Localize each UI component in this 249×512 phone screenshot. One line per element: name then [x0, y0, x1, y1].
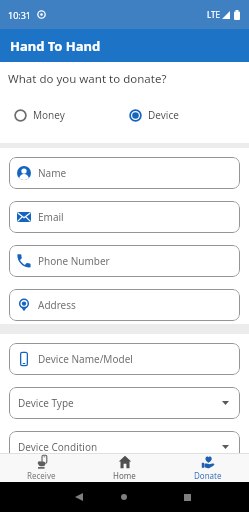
staticText: Device Condition: [18, 440, 98, 454]
button[interactable]: Phone Number: [9, 245, 240, 277]
staticText: Device Name/Model: [38, 352, 133, 366]
staticText: Device: [148, 108, 179, 122]
button[interactable]: Email: [9, 201, 240, 233]
button[interactable]: Device Name/Model: [9, 343, 240, 375]
button[interactable]: Address: [9, 289, 240, 321]
staticText: Phone Number: [38, 254, 110, 268]
staticText: Hand To Hand: [10, 37, 101, 55]
staticText: Name: [38, 166, 67, 180]
button[interactable]: Name: [9, 157, 240, 189]
button[interactable]: Home: [83, 453, 166, 482]
staticText: Money: [33, 108, 65, 122]
staticText: 10:31: [8, 9, 32, 21]
button[interactable]: Device Type: [9, 387, 240, 419]
staticText: Receive: [27, 470, 56, 481]
staticText: LTE: [207, 9, 220, 20]
staticText: Email: [38, 210, 64, 224]
button[interactable]: Donate: [166, 453, 249, 482]
button[interactable]: Device Condition: [9, 431, 240, 463]
staticText: Donate: [194, 470, 222, 481]
staticText: What do you want to donate?: [8, 71, 167, 87]
staticText: Device Type: [18, 396, 74, 410]
button[interactable]: Device: [129, 108, 179, 122]
button[interactable]: Money: [14, 108, 65, 122]
staticText: Address: [38, 298, 76, 312]
button[interactable]: Receive: [0, 453, 83, 482]
staticText: Home: [113, 470, 136, 481]
